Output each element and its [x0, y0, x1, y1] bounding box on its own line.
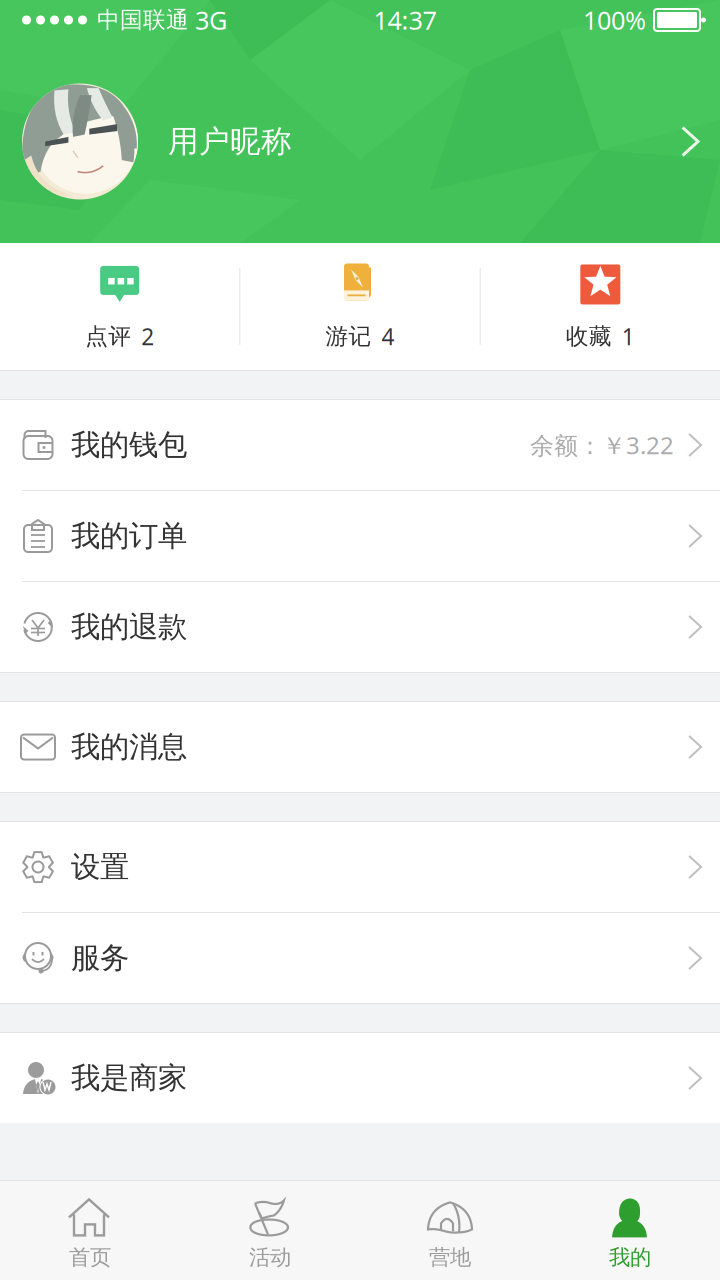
button[interactable]: 营地	[360, 1190, 540, 1271]
button[interactable]: 收藏	[481, 243, 720, 369]
button[interactable]: 游记	[240, 243, 480, 369]
staticText: 游记	[325, 323, 371, 350]
staticText: 我的退款	[71, 609, 187, 645]
staticText: 1	[622, 321, 635, 351]
button[interactable]: 我的	[540, 1190, 720, 1271]
staticText: 活动	[249, 1244, 291, 1271]
button[interactable]: 我的退款	[0, 582, 720, 672]
button[interactable]: 点评	[0, 243, 239, 369]
button[interactable]: 设置	[0, 822, 720, 912]
staticText: 2	[141, 321, 154, 351]
staticText: 100%	[583, 3, 646, 37]
staticText: 首页	[69, 1244, 111, 1271]
staticText: 服务	[71, 940, 129, 976]
staticText: 14:37	[373, 3, 436, 37]
staticText: 收藏	[566, 323, 612, 350]
staticText: 设置	[71, 849, 129, 885]
staticText: 4	[381, 321, 394, 351]
staticText: 点评	[85, 323, 131, 350]
staticText: 我的订单	[71, 518, 187, 554]
button[interactable]: 我的消息	[0, 702, 720, 792]
button[interactable]: 服务	[0, 913, 720, 1003]
button[interactable]: 我的钱包	[0, 400, 720, 490]
staticText: 3G	[195, 3, 227, 37]
staticText: 我的	[609, 1244, 651, 1271]
staticText: 营地	[429, 1244, 471, 1271]
staticText: 我的钱包	[71, 427, 187, 463]
staticText: 中国联通	[97, 6, 189, 34]
staticText: 余额：￥3.22	[530, 429, 674, 461]
button[interactable]: 用户昵称	[0, 40, 720, 243]
staticText: 用户昵称	[168, 123, 292, 160]
staticText: 我的消息	[71, 729, 187, 765]
button[interactable]: 我的订单	[0, 491, 720, 581]
staticText: 我是商家	[71, 1060, 187, 1096]
button[interactable]: 我是商家	[0, 1033, 720, 1123]
button[interactable]: 首页	[0, 1190, 180, 1271]
button[interactable]: 活动	[180, 1190, 360, 1271]
